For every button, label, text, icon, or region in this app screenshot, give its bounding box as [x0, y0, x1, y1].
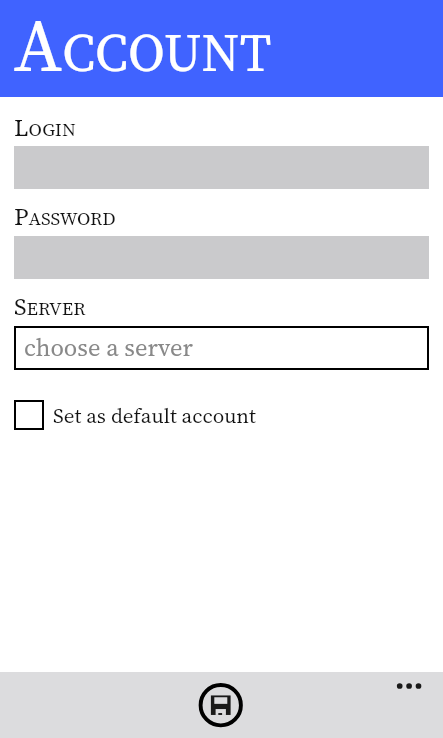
button[interactable]: More options: [385, 672, 433, 700]
staticText: SERVER: [14, 290, 86, 324]
staticText: choose a server: [24, 331, 193, 365]
staticText: Set as default account: [53, 401, 256, 430]
button[interactable]: Set as default account: [14, 400, 256, 430]
staticText: ACCOUNT: [14, 0, 272, 95]
staticText: LOGIN: [14, 111, 76, 145]
staticText: PASSWORD: [14, 200, 116, 234]
button[interactable]: choose a server: [14, 326, 429, 370]
button[interactable]: Save: [196, 681, 245, 730]
